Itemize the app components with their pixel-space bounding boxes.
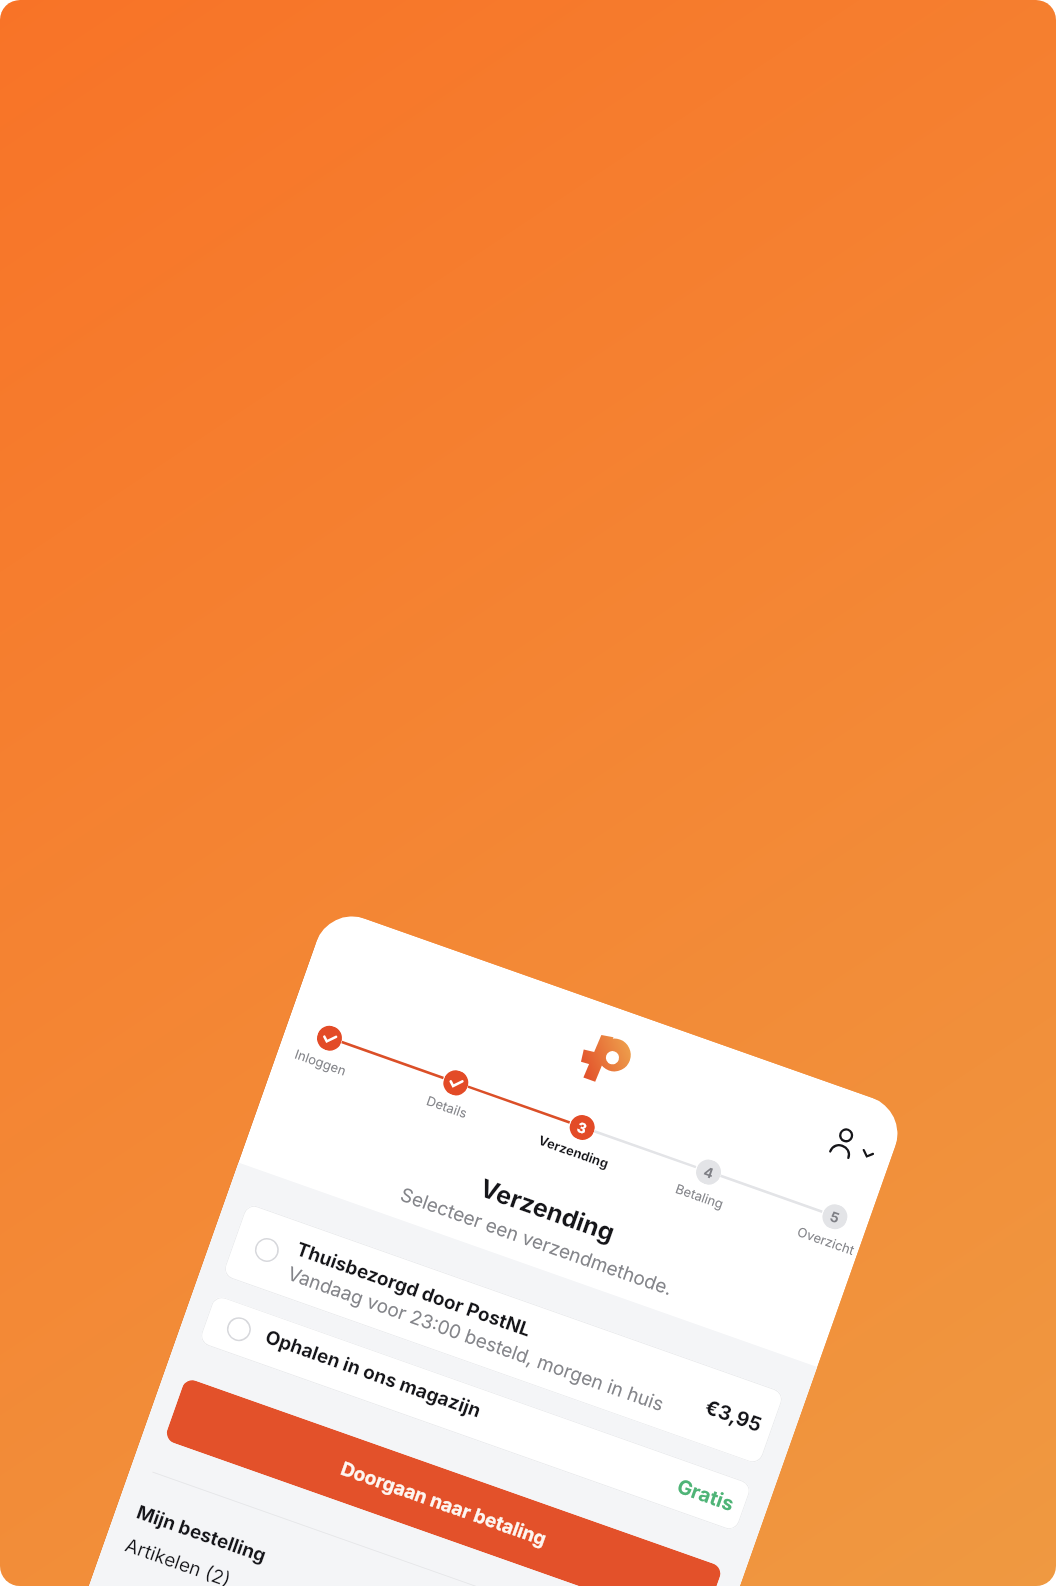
button[interactable]: Inloggen (276, 1012, 376, 1085)
button[interactable]: 5 (781, 1190, 871, 1259)
staticText: Thuisbezorgd door PostNL (293, 1238, 535, 1342)
staticText: €3,95 (702, 1395, 765, 1437)
button[interactable]: Details (402, 1056, 502, 1129)
staticText: Selecteer een verzendmethode. (397, 1183, 676, 1300)
staticText: Verzending (476, 1173, 619, 1248)
button[interactable]: 3 (528, 1100, 628, 1174)
staticText: Ophalen in ons magazijn (262, 1325, 484, 1423)
staticText: Artikelen (2) (122, 1533, 234, 1586)
staticText: Overzicht (795, 1223, 857, 1258)
staticText: Inloggen (292, 1046, 349, 1079)
button[interactable]: Thuisbezorgd door PostNL (222, 1203, 785, 1465)
button[interactable]: Account (816, 1113, 872, 1169)
staticText: Vandaag voor 23:00 besteld, morgen in hu… (285, 1262, 667, 1416)
staticText: 3 (575, 1118, 590, 1137)
staticText: 4 (701, 1163, 717, 1182)
staticText: Doorgaan naar betaling (338, 1457, 550, 1551)
staticText: Betaling (673, 1180, 726, 1212)
staticText: Verzending (537, 1132, 611, 1171)
staticText: 5 (828, 1207, 842, 1226)
button[interactable]: Ophalen in ons magazijn (198, 1294, 753, 1532)
button[interactable]: Doorgaan naar betaling (164, 1377, 723, 1586)
button[interactable]: 4 (654, 1145, 755, 1219)
button[interactable]: Account menu (855, 1142, 880, 1166)
staticText: Gratis (674, 1474, 738, 1516)
staticText: Details (424, 1092, 469, 1121)
staticText: Mijn bestelling (134, 1500, 269, 1567)
